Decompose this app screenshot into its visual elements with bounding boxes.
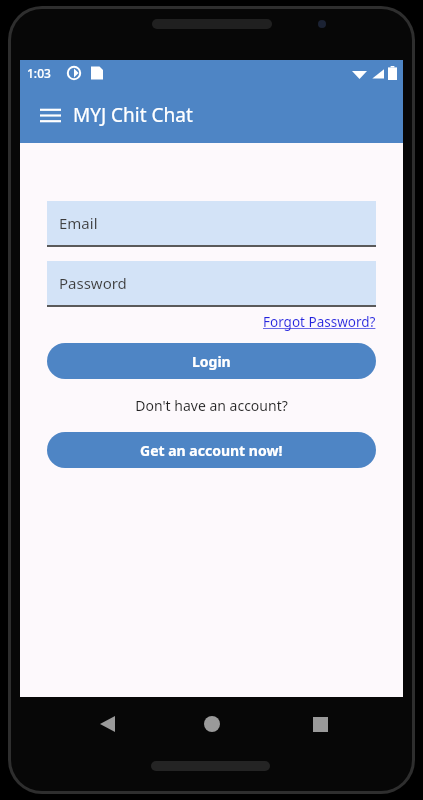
button[interactable]: Get an account now! [47, 432, 376, 468]
staticText: Get an account now! [140, 441, 283, 460]
button[interactable]: Recent apps [299, 703, 341, 745]
staticText: Email [59, 213, 98, 233]
staticText: 1:03 [27, 65, 51, 81]
button[interactable]: Email [47, 201, 376, 247]
staticText: MYJ Chit Chat [73, 102, 193, 128]
button[interactable]: Forgot Password? [263, 313, 376, 331]
button[interactable]: Back [86, 703, 128, 745]
staticText: Don't have an account? [47, 396, 376, 415]
button[interactable]: Login [47, 343, 376, 379]
staticText: Login [192, 352, 231, 371]
button[interactable]: Password [47, 261, 376, 307]
staticText: Password [59, 273, 127, 293]
button[interactable]: Open navigation menu [30, 95, 70, 135]
button[interactable]: Home [191, 703, 233, 745]
